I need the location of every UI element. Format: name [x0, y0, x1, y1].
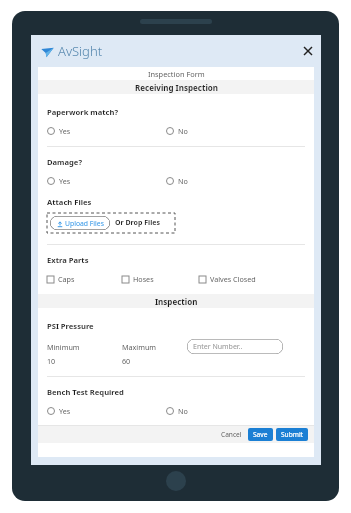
- button[interactable]: Hoses: [122, 274, 199, 284]
- staticText: 60: [122, 356, 131, 366]
- staticText: Inspection Form: [148, 69, 205, 79]
- staticText: No: [178, 406, 188, 416]
- staticText: Hoses: [133, 274, 154, 284]
- button[interactable]: AvSight: [41, 42, 103, 60]
- staticText: AvSight: [58, 42, 103, 60]
- staticText: PSI Pressure: [47, 321, 94, 331]
- button[interactable]: Yes: [47, 406, 166, 416]
- staticText: Save: [253, 430, 268, 439]
- button[interactable]: Save: [248, 428, 273, 441]
- staticText: No: [178, 176, 188, 186]
- staticText: Yes: [59, 406, 71, 416]
- button[interactable]: Yes: [47, 126, 166, 136]
- button[interactable]: Upload Files: [50, 216, 110, 230]
- staticText: Maximum: [122, 342, 157, 352]
- button[interactable]: Close: [301, 44, 315, 58]
- button[interactable]: Valves Closed: [199, 274, 256, 284]
- staticText: 10: [47, 356, 56, 366]
- button[interactable]: Submit: [276, 428, 308, 441]
- staticText: Caps: [58, 274, 75, 284]
- button[interactable]: Caps: [47, 274, 122, 284]
- staticText: Upload Files: [65, 219, 104, 228]
- staticText: Cancel: [221, 430, 242, 439]
- staticText: Yes: [59, 176, 71, 186]
- staticText: Paperwork match?: [47, 107, 119, 117]
- staticText: Inspection: [155, 296, 198, 307]
- staticText: Bench Test Required: [47, 387, 124, 397]
- button[interactable]: Cancel: [218, 428, 245, 441]
- staticText: Attach Files: [47, 197, 92, 207]
- staticText: Submit: [281, 430, 303, 439]
- staticText: No: [178, 126, 188, 136]
- staticText: Yes: [59, 126, 71, 136]
- staticText: Valves Closed: [210, 274, 256, 284]
- button[interactable]: No: [166, 126, 188, 136]
- button[interactable]: Yes: [47, 176, 166, 186]
- button[interactable]: No: [166, 176, 188, 186]
- button[interactable]: No: [166, 406, 188, 416]
- staticText: Receiving Inspection: [135, 82, 218, 93]
- staticText: Minimum: [47, 342, 80, 352]
- staticText: Enter Number..: [193, 342, 243, 352]
- staticText: Extra Parts: [47, 255, 89, 265]
- button[interactable]: Enter Number..: [187, 339, 283, 354]
- staticText: Damage?: [47, 157, 83, 167]
- staticText: Or Drop Files: [115, 218, 160, 228]
